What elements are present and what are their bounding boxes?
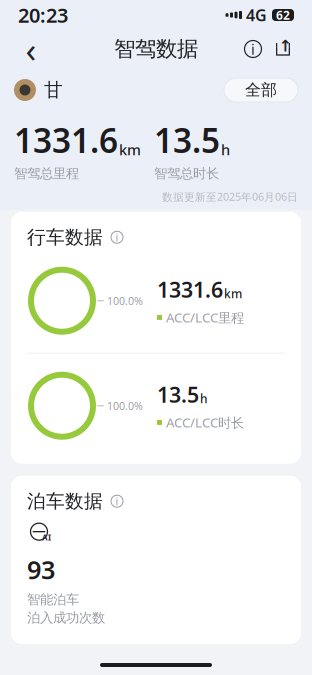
staticText: 数据更新至2025年06月06日 bbox=[162, 190, 298, 204]
staticText: 泊车数据 bbox=[27, 490, 103, 513]
button[interactable]: 泊车数据 info bbox=[108, 492, 126, 510]
staticText: 智驾总时长 bbox=[154, 165, 219, 182]
staticText: km bbox=[119, 140, 141, 159]
staticText: 13.5 bbox=[154, 118, 220, 162]
staticText: 20:23 bbox=[18, 2, 68, 28]
staticText: 全部 bbox=[245, 80, 277, 100]
staticText: i bbox=[251, 39, 255, 59]
staticText: ACC/LCC里程 bbox=[166, 308, 244, 326]
staticText: 4G bbox=[246, 4, 267, 26]
button[interactable]: Information bbox=[238, 34, 268, 64]
staticText: AI bbox=[42, 532, 51, 543]
staticText: 93 bbox=[27, 553, 55, 586]
staticText: 甘 bbox=[44, 78, 63, 101]
staticText: 智驾总里程 bbox=[14, 165, 79, 182]
staticText: ACC/LCC时长 bbox=[166, 413, 244, 431]
button[interactable]: 行车数据 info bbox=[108, 228, 126, 246]
button[interactable]: 全部 bbox=[224, 78, 298, 102]
staticText: 泊入成功次数 bbox=[27, 610, 105, 626]
staticText: 智能泊车 bbox=[27, 591, 79, 608]
staticText: km bbox=[224, 286, 242, 301]
button[interactable]: Back bbox=[14, 32, 48, 66]
staticText: 100.0% bbox=[107, 399, 143, 413]
staticText: ‹ bbox=[25, 26, 36, 72]
staticText: 行车数据 bbox=[27, 226, 103, 249]
staticText: 智驾数据 bbox=[114, 36, 198, 62]
staticText: 100.0% bbox=[107, 294, 143, 308]
staticText: h bbox=[221, 140, 230, 159]
staticText: 1331.6 bbox=[14, 118, 118, 162]
staticText: i bbox=[115, 494, 118, 508]
staticText: i bbox=[115, 230, 118, 244]
staticText: 62 bbox=[276, 7, 290, 23]
staticText: 1331.6 bbox=[157, 275, 223, 303]
staticText: 13.5 bbox=[157, 380, 199, 408]
staticText: h bbox=[200, 391, 208, 406]
staticText: ↑ bbox=[278, 37, 291, 55]
button[interactable]: Share bbox=[268, 34, 298, 64]
